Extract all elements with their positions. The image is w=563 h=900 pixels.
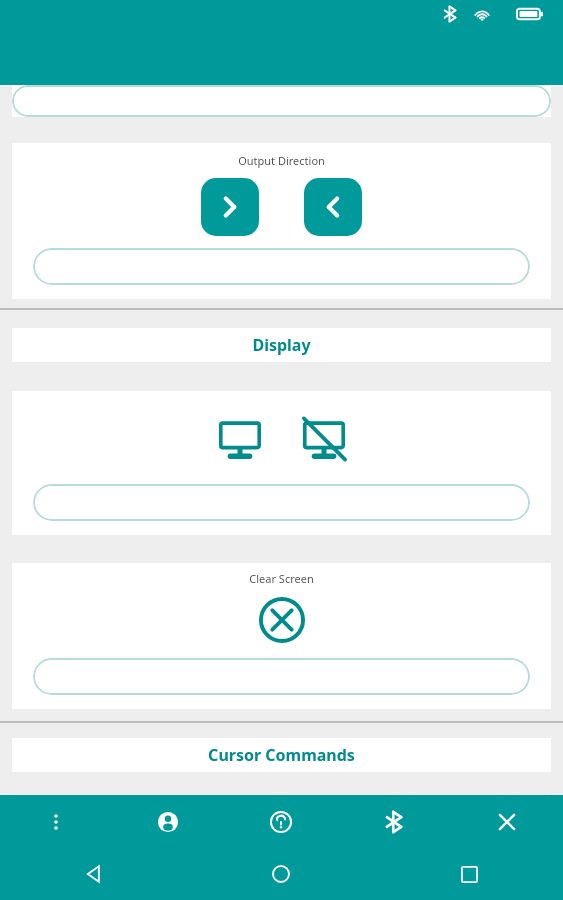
button[interactable] bbox=[33, 248, 530, 285]
button[interactable]: Output left bbox=[304, 178, 362, 236]
button[interactable] bbox=[33, 658, 530, 695]
staticText: Display bbox=[12, 334, 551, 356]
button[interactable] bbox=[12, 85, 551, 117]
button[interactable]: Help bbox=[224, 795, 337, 848]
button[interactable]: Close bbox=[450, 795, 563, 848]
button[interactable]: Bluetooth bbox=[337, 795, 450, 848]
button[interactable]: Display on bbox=[212, 411, 268, 467]
button[interactable]: Clear screen bbox=[254, 592, 310, 648]
staticText: Output Direction bbox=[12, 153, 551, 168]
button[interactable]: Account bbox=[112, 795, 224, 848]
button[interactable] bbox=[33, 484, 530, 521]
button[interactable]: Display off bbox=[296, 411, 352, 467]
button[interactable]: Output right bbox=[201, 178, 259, 236]
staticText: Clear Screen bbox=[12, 571, 551, 586]
button[interactable]: More options bbox=[0, 795, 112, 848]
staticText: Cursor Commands bbox=[12, 744, 551, 766]
